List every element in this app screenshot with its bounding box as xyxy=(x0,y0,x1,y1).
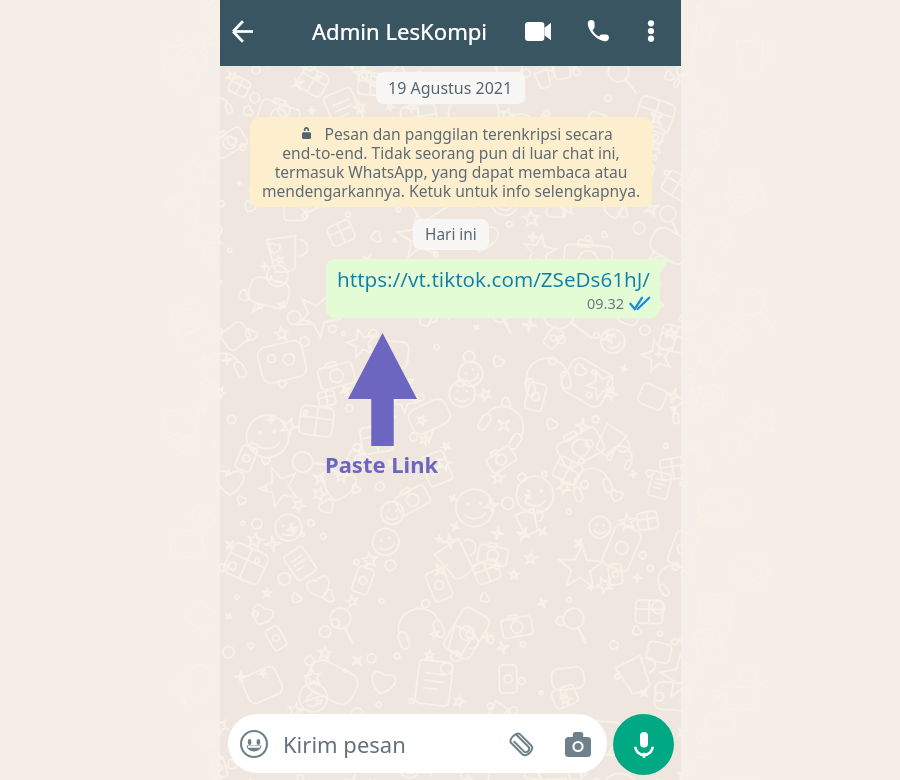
button[interactable]: Voice message xyxy=(613,714,674,775)
button[interactable]: Call xyxy=(576,9,620,53)
button[interactable]: Kirim pesan xyxy=(228,714,607,773)
staticText: 09.32 xyxy=(587,293,625,313)
button[interactable]: 19 Agustus 2021 xyxy=(376,72,525,104)
staticText: 19 Agustus 2021 xyxy=(388,77,513,99)
button[interactable]: Attach xyxy=(505,728,537,760)
button[interactable]: Pesan dan panggilan terenkripsi secara e… xyxy=(250,117,652,207)
staticText: Hari ini xyxy=(425,224,477,245)
button[interactable]: Hari ini xyxy=(413,219,489,250)
staticText: https://vt.tiktok.com/ZSeDs61hJ/ xyxy=(337,265,650,293)
button[interactable]: https://vt.tiktok.com/ZSeDs61hJ/ xyxy=(326,259,660,318)
button[interactable]: Camera xyxy=(562,728,594,760)
button[interactable]: Back xyxy=(220,9,264,53)
staticText: Admin LesKompi xyxy=(312,16,488,46)
button[interactable]: More options xyxy=(629,9,673,53)
staticText: Kirim pesan xyxy=(283,729,406,759)
staticText: Pesan dan panggilan terenkripsi secara e… xyxy=(260,123,642,201)
staticText: Paste Link xyxy=(325,449,439,479)
button[interactable]: Video call xyxy=(516,9,560,53)
